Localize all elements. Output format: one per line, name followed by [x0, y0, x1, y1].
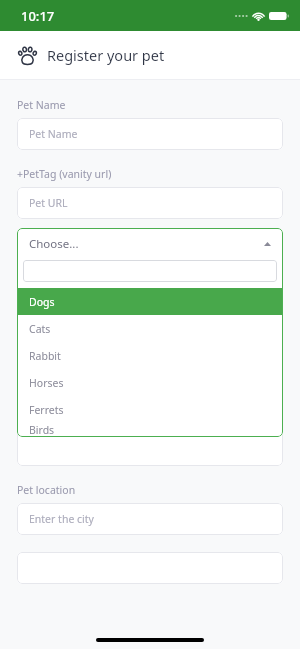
button[interactable]: Enter the city	[17, 503, 283, 535]
staticText: Pet Name	[29, 127, 78, 141]
staticText: Pet Name	[17, 98, 66, 112]
other: Paw	[17, 46, 38, 65]
staticText: Dogs	[29, 295, 55, 309]
button[interactable]: Paw	[17, 45, 165, 65]
staticText: Cats	[29, 322, 51, 336]
button[interactable]: Ferrets	[17, 396, 283, 423]
button[interactable]	[17, 552, 283, 584]
staticText: About	[17, 368, 47, 382]
button[interactable]: Birds	[17, 423, 283, 437]
button[interactable]	[23, 260, 277, 282]
button[interactable]: Rabbit	[17, 342, 283, 369]
staticText: Rabbit	[29, 349, 61, 363]
button[interactable]: Cats	[17, 315, 283, 342]
button[interactable]: Dogs	[17, 288, 283, 315]
button[interactable]	[17, 319, 283, 351]
other: Collapse	[264, 242, 271, 246]
staticText: Pet description	[29, 398, 104, 412]
staticText: Pet URL	[29, 196, 68, 210]
staticText: Ferrets	[29, 403, 64, 417]
button[interactable]: Pet URL	[17, 187, 283, 219]
staticText: Register your pet	[47, 45, 165, 65]
button[interactable]: Choose...	[17, 228, 283, 260]
staticText: 10:17	[21, 7, 55, 25]
staticText: Pet location	[17, 483, 76, 497]
button[interactable]: Horses	[17, 369, 283, 396]
staticText: Choose...	[29, 236, 79, 252]
staticText: +PetTag (vanity url)	[17, 167, 112, 181]
staticText: Type	[17, 236, 41, 250]
button[interactable]: Pet Name	[17, 118, 283, 150]
staticText: Horses	[29, 376, 64, 390]
staticText: Birds	[29, 423, 55, 437]
button[interactable]: Pet description	[17, 388, 283, 466]
staticText: Enter the city	[29, 512, 94, 526]
